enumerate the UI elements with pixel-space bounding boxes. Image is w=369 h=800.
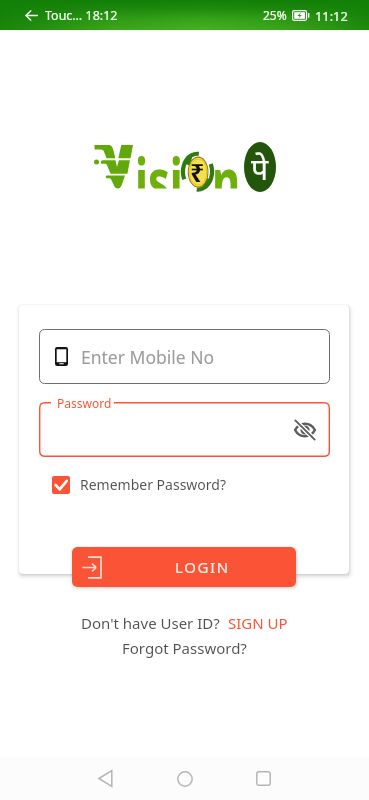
staticText: ₹ xyxy=(190,155,205,189)
staticText: Password xyxy=(57,395,112,411)
button[interactable]: LOGIN xyxy=(72,547,296,587)
staticText: 25% xyxy=(263,7,287,23)
button[interactable]: Back xyxy=(25,9,38,22)
button[interactable]: Home xyxy=(163,757,207,800)
staticText: Forgot Password? xyxy=(122,638,247,658)
staticText: SIGN UP xyxy=(228,613,288,633)
button[interactable]: Back xyxy=(83,757,127,800)
staticText: isi xyxy=(135,136,183,188)
button[interactable]: SIGN UP xyxy=(228,613,288,633)
staticText: पे xyxy=(251,148,269,189)
button[interactable]: Show password xyxy=(290,415,320,445)
button[interactable]: Remember Password? xyxy=(52,475,227,494)
staticText: 11:12 xyxy=(315,7,348,24)
staticText: LOGIN xyxy=(175,557,230,577)
staticText: Remember Password? xyxy=(80,475,227,494)
button[interactable]: Enter Mobile No xyxy=(39,329,330,384)
button[interactable]: Recents xyxy=(241,757,285,800)
staticText: Touc… 18:12 xyxy=(45,7,118,24)
button[interactable]: Forgot Password? xyxy=(122,638,247,658)
staticText: Enter Mobile No xyxy=(81,345,215,369)
staticText: Don't have User ID? xyxy=(81,613,220,633)
staticText: n xyxy=(212,136,241,188)
